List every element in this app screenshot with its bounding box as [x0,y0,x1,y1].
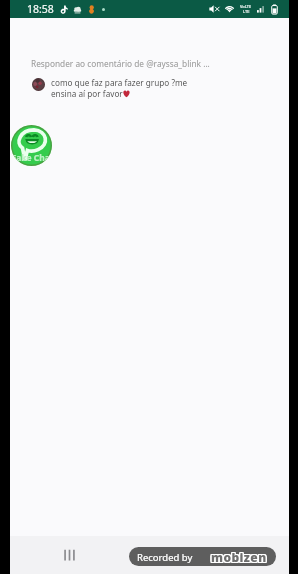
button[interactable]: Fake Chat app icon [11,125,52,166]
staticText: como que faz para fazer grupo ?me [51,77,188,88]
staticText: mobizen [212,549,268,565]
staticText: mobizen [210,549,266,565]
staticText: mobizen [211,548,267,564]
button[interactable]: Recent apps [58,544,80,566]
staticText: mobizen [212,548,268,564]
staticText: mobizen [210,548,266,564]
staticText: mobizen [210,550,266,566]
staticText: LTE [243,9,250,14]
staticText: Recorded by [137,551,193,564]
staticText: 18:58 [27,2,54,16]
staticText: mobizen [212,550,268,566]
staticText: ensina aí por favor [51,88,123,99]
staticText: VoLTE [240,4,252,9]
staticText: Responder ao comentário de @rayssa_blink… [31,58,210,69]
staticText: Fake Chat [11,152,52,164]
staticText: mobizen [211,550,267,566]
staticText: mobizen [211,549,267,565]
button[interactable]: rayssa_blink avatar [32,78,45,91]
button[interactable]: rayssa_blink avatar [31,77,188,99]
button[interactable]: Responder ao comentário de @rayssa_blink… [31,58,210,69]
